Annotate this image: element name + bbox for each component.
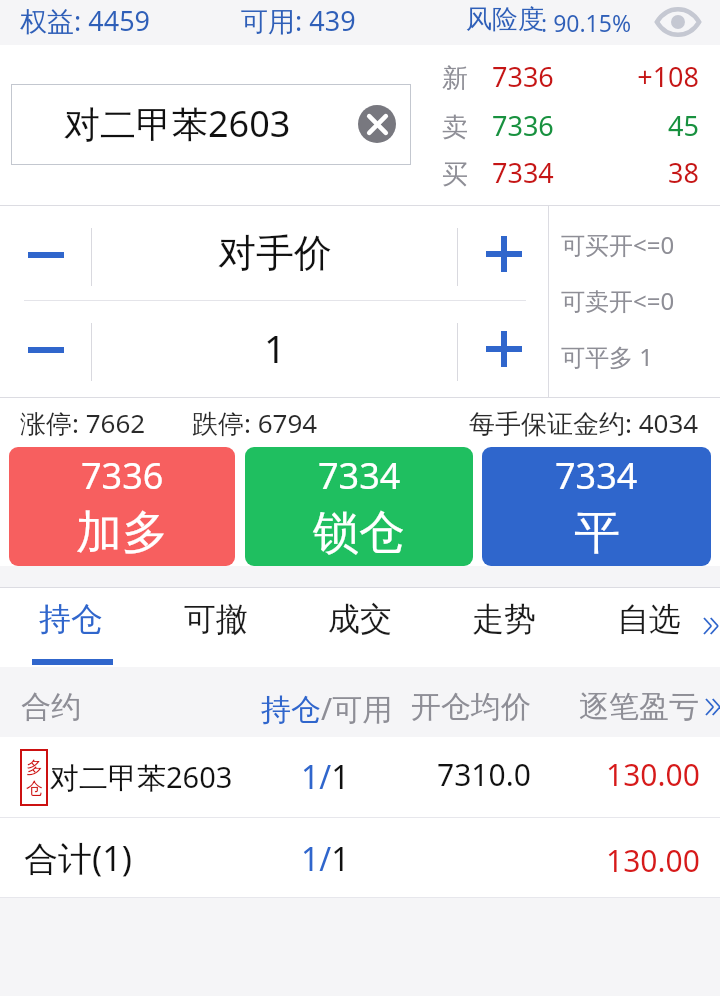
button[interactable]: 对二甲苯2603 [11,84,411,165]
button[interactable]: 持仓 [11,583,131,654]
staticText: 走势 [472,599,536,639]
staticText: 多 [26,757,43,778]
button[interactable]: 权益: 4459 [0,0,210,45]
staticText: +108 [430,58,699,95]
staticText: 对二甲苯2603 [64,99,291,148]
button[interactable]: Decrease [0,208,91,302]
staticText: 130.00 [606,840,700,881]
staticText: : 90.15% [541,7,632,38]
staticText: 卖 [442,111,468,144]
staticText: 可卖开<=0 [561,284,675,317]
staticText: 新 [442,62,468,95]
staticText: 买 [442,158,468,191]
staticText: 可买开<=0 [561,228,675,261]
button[interactable]: 成交 [300,583,420,654]
staticText: 合计(1) [24,835,132,881]
staticText: 涨停: 7662 [20,405,146,441]
staticText: 7334 [555,451,638,500]
button[interactable]: Toggle balance visibility [645,0,711,44]
staticText: 风险度 [466,3,544,36]
staticText: 7336 [492,58,554,95]
button[interactable]: 新 [430,56,710,103]
staticText: 成交 [328,599,392,639]
staticText: 逐笔盈亏 [579,688,699,726]
staticText: 1/1 [301,837,350,881]
button[interactable]: 卖 [430,105,710,152]
staticText: 7336 [492,107,554,144]
button[interactable]: Clear search [358,105,396,143]
button[interactable]: 7336 [9,447,235,566]
staticText: 持仓/可用 [261,688,393,729]
staticText: 持仓 [39,599,103,639]
staticText: 开仓均价 [411,688,531,726]
staticText: 可用: 439 [241,2,356,39]
staticText: 7310.0 [437,754,531,795]
button[interactable]: 风险度 [450,0,645,45]
button[interactable]: Increase [458,207,549,301]
staticText: 跌停: 6794 [192,405,318,441]
button[interactable]: 走势 [444,583,564,654]
staticText: 7334 [318,451,401,500]
staticText: 每手保证金约: 4034 [469,405,699,441]
button[interactable]: More columns [706,690,720,724]
staticText: 7336 [81,451,164,500]
button[interactable]: 买 [430,152,710,199]
button[interactable]: 可用: 439 [225,0,385,45]
staticText: 仓 [26,778,43,799]
button[interactable]: 7334 [245,447,473,566]
staticText: 权益: 4459 [20,2,151,39]
staticText: 自选 [617,599,681,639]
button[interactable]: Decrease [0,303,91,397]
staticText: 对手价 [218,229,332,277]
button[interactable]: 可撤 [156,583,276,654]
button[interactable]: 自选 [589,583,709,654]
button[interactable]: Increase [458,302,549,396]
staticText: 可平多 1 [561,340,653,373]
button[interactable]: 7334 [482,447,711,566]
staticText: 可撤 [184,599,248,639]
staticText: 45 [430,107,699,144]
staticText: 对二甲苯2603 [50,757,233,797]
staticText: 平 [574,504,620,562]
staticText: 加多 [76,504,168,562]
staticText: 130.00 [606,754,700,795]
staticText: 1 [264,322,286,374]
staticText: 锁仓 [313,504,405,562]
staticText: 38 [430,154,699,191]
button[interactable] [0,737,720,817]
staticText: 合约 [21,688,81,726]
staticText: 1/1 [301,755,350,799]
staticText: 7334 [492,154,554,191]
button[interactable]: More tabs [701,600,720,652]
